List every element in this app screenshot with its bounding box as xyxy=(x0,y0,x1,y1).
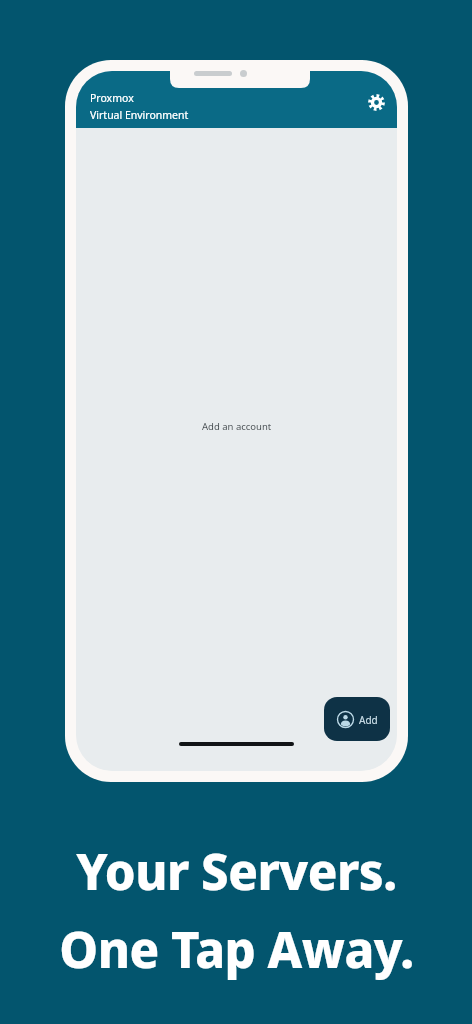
button[interactable]: Settings xyxy=(364,90,388,114)
staticText: Add an account xyxy=(202,420,272,433)
button[interactable]: Add xyxy=(324,697,390,741)
staticText: Add xyxy=(359,713,378,727)
button[interactable]: Proxmox xyxy=(88,91,191,122)
staticText: Proxmox xyxy=(90,91,134,105)
staticText: Virtual Environment xyxy=(90,108,189,122)
staticText: One Tap Away. xyxy=(59,916,414,983)
staticText: Your Servers. xyxy=(76,838,397,905)
